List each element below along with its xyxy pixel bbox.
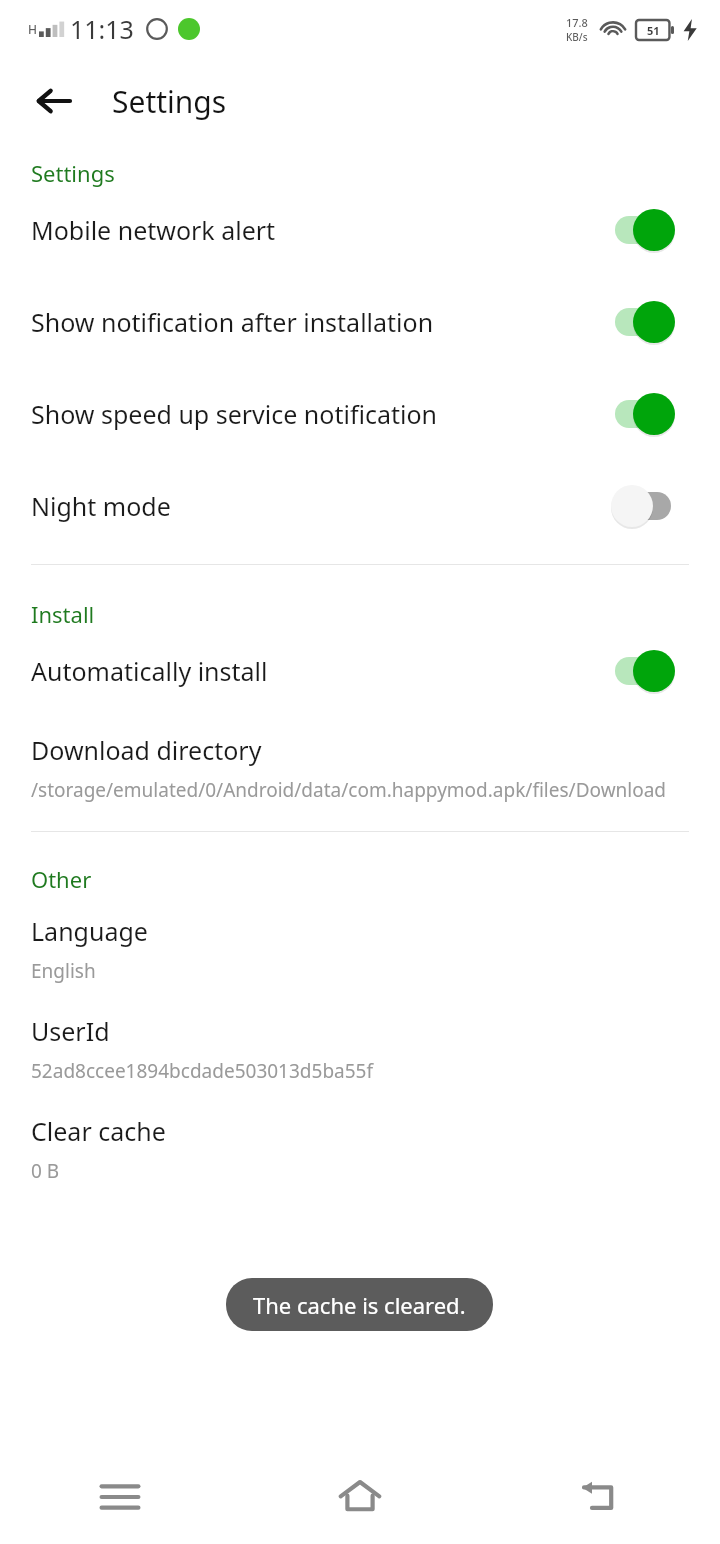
staticText: KB/s xyxy=(566,30,588,44)
staticText: Install xyxy=(31,599,720,629)
staticText: H xyxy=(28,21,37,37)
staticText: Language xyxy=(31,914,148,948)
staticText: 11:13 xyxy=(70,12,134,46)
button[interactable]: Mobile network alert xyxy=(0,210,720,250)
staticText: Download directory xyxy=(31,733,262,767)
button[interactable]: Show speed up service notification xyxy=(0,394,720,434)
button[interactable]: Download directory xyxy=(0,733,720,803)
button[interactable]: Back xyxy=(480,1450,720,1544)
button[interactable]: UserId xyxy=(0,1014,720,1084)
button[interactable]: Recents xyxy=(0,1450,240,1544)
staticText: UserId xyxy=(31,1014,110,1048)
staticText: 0 B xyxy=(31,1158,60,1184)
staticText: Show notification after installation xyxy=(31,305,611,339)
staticText: 52ad8ccee1894bcdade503013d5ba55f xyxy=(31,1058,374,1084)
button[interactable]: Home xyxy=(240,1450,480,1544)
staticText: The cache is cleared. xyxy=(253,1290,466,1320)
button[interactable]: Language xyxy=(0,914,720,984)
button[interactable]: Clear cache xyxy=(0,1114,720,1184)
button[interactable]: Back xyxy=(18,65,90,137)
staticText: 51 xyxy=(647,23,660,38)
button[interactable]: Night mode xyxy=(0,486,720,526)
button[interactable]: Show notification after installation xyxy=(0,302,720,342)
staticText: Mobile network alert xyxy=(31,213,611,247)
staticText: Clear cache xyxy=(31,1114,166,1148)
staticText: Show speed up service notification xyxy=(31,397,611,431)
staticText: 17.8 xyxy=(566,15,588,30)
staticText: Night mode xyxy=(31,489,611,523)
staticText: Automatically install xyxy=(31,654,611,688)
button[interactable]: Automatically install xyxy=(0,651,720,691)
staticText: Settings xyxy=(112,81,227,122)
staticText: /storage/emulated/0/Android/data/com.hap… xyxy=(31,777,667,803)
staticText: Other xyxy=(31,864,720,894)
staticText: English xyxy=(31,958,96,984)
staticText: Settings xyxy=(31,158,720,188)
